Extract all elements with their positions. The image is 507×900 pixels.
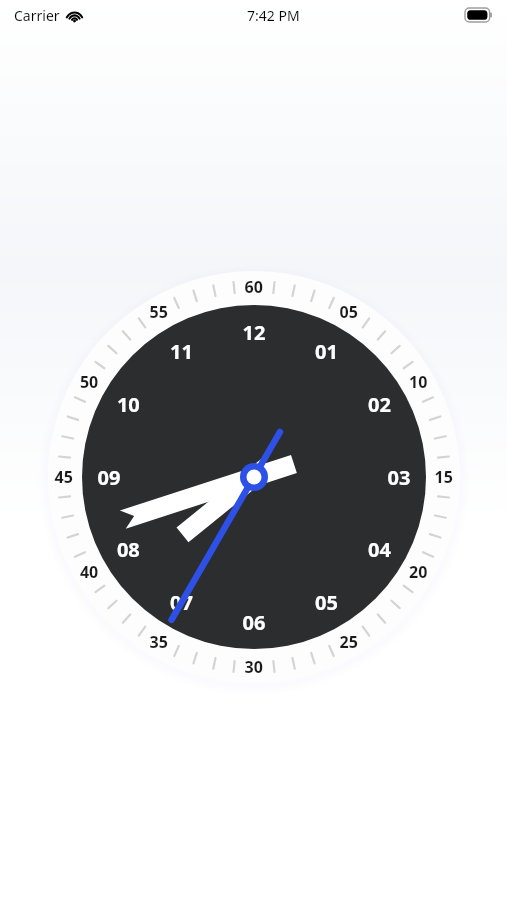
button[interactable]: Analog clock showing 7:42 [0, 0, 507, 900]
staticText: Carrier [14, 6, 60, 25]
other: Wi-Fi signal [66, 9, 83, 22]
staticText: 7:42 PM [247, 6, 300, 25]
other: Battery full [465, 8, 493, 22]
